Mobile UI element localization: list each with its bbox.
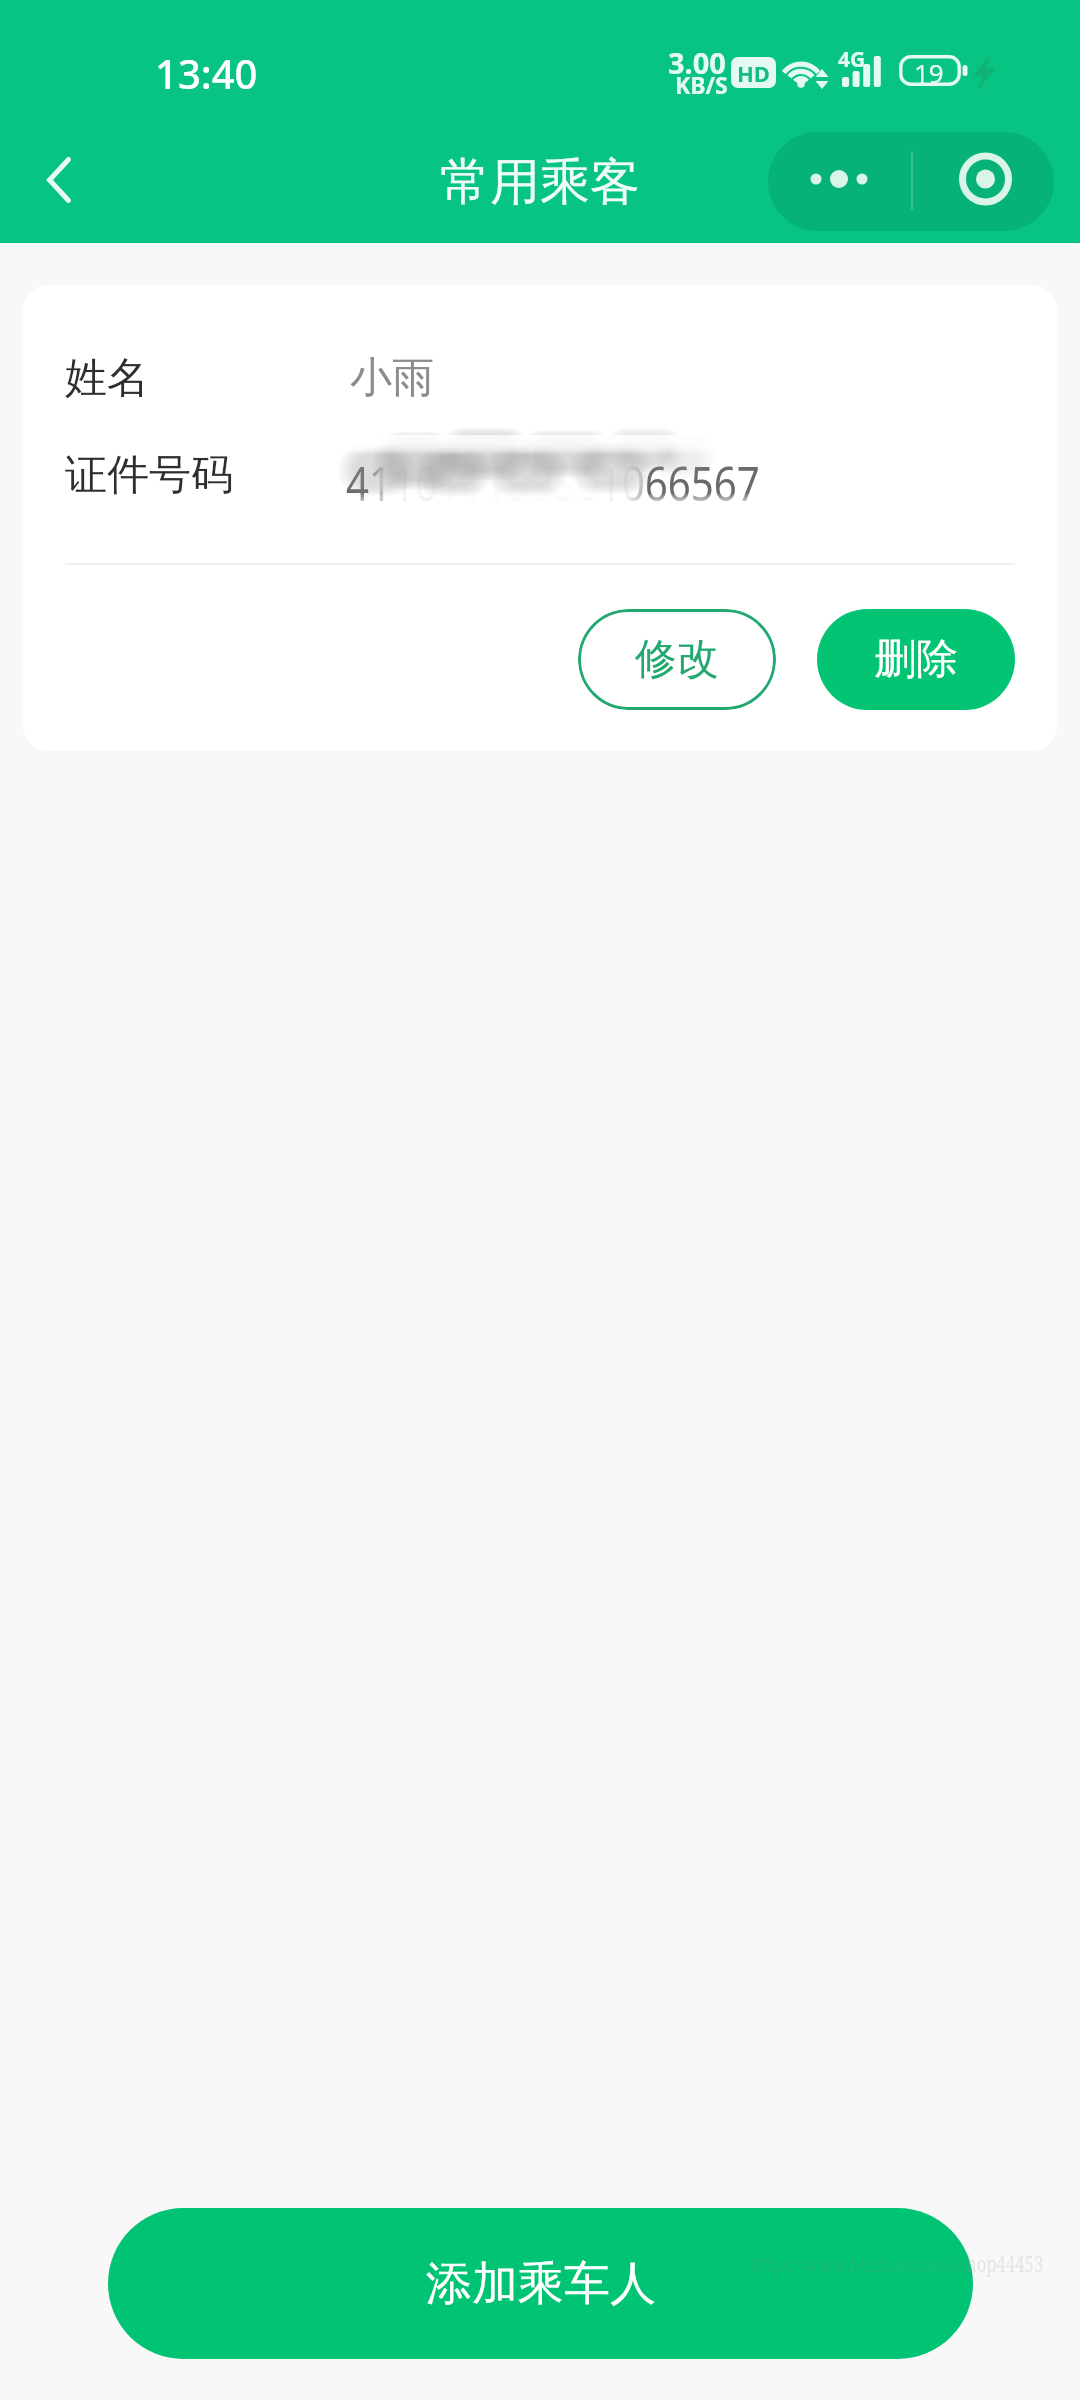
staticText: 3.00 [668,43,726,82]
staticText: https://www.huzhan.com/ishop44453 [749,2248,1044,2278]
button[interactable]: Close mini program [911,132,1054,231]
staticText: 小雨 [350,352,434,405]
staticText: HD [737,58,770,88]
staticText: 411011199301066567 [346,451,760,515]
staticText: 证件号码 [65,449,233,502]
staticText: 常用乘客 [440,151,640,214]
staticText: 19 [914,55,944,89]
staticText: KB/S [675,69,728,100]
button[interactable]: 修改 [578,609,776,710]
staticText: 删除 [874,633,958,686]
staticText: 13:40 [155,46,258,100]
staticText: 修改 [635,633,719,686]
button[interactable]: 添加乘车人 [108,2208,973,2359]
button[interactable]: 删除 [817,609,1015,710]
staticText: 姓名 [65,352,149,405]
staticText: 4G [838,45,866,74]
button[interactable]: Back [21,142,97,218]
button[interactable]: More options [768,132,911,231]
staticText: 添加乘车人 [426,2255,656,2313]
